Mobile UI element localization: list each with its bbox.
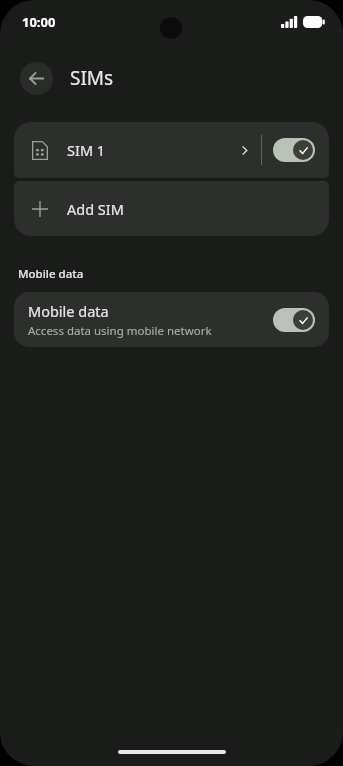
button[interactable]: SIM 1 — [14, 122, 329, 178]
staticText: SIMs — [70, 65, 114, 91]
staticText: Add SIM — [67, 199, 124, 219]
staticText: Mobile data — [18, 266, 84, 282]
button[interactable]: Toggle — [273, 138, 315, 162]
button[interactable]: Mobile data — [14, 292, 329, 347]
button[interactable]: Back — [20, 62, 53, 95]
button[interactable]: Toggle — [273, 308, 315, 332]
button[interactable]: Add SIM — [14, 181, 329, 236]
staticText: SIM 1 — [67, 140, 241, 160]
staticText: 10:00 — [22, 13, 56, 31]
staticText: Access data using mobile network — [28, 323, 212, 339]
staticText: Mobile data — [28, 301, 109, 321]
